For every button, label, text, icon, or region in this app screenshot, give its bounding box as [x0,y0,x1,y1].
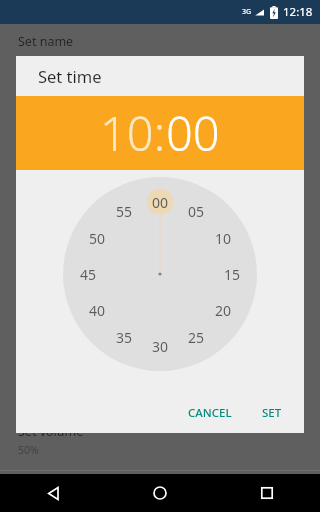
staticText: Alarm 1 [18,53,57,67]
staticText: 55 [116,202,133,221]
staticText: 20 [215,301,232,320]
staticText: 10 [215,229,232,248]
staticText: 15 [224,265,241,284]
staticText: 50% [18,443,39,457]
staticText: 40 [89,301,106,320]
staticText: 30 [152,337,169,356]
button[interactable]: Home [106,474,213,512]
staticText: Set volume [18,423,84,440]
staticText: CANCEL [188,405,232,421]
staticText: 00 [152,193,169,212]
button[interactable]: Back [0,474,106,512]
button[interactable]: 00 [166,101,220,165]
button[interactable]: 10: [100,101,166,165]
button[interactable]: CANCEL [180,399,240,427]
staticText: Set name [18,33,74,50]
staticText: 05 [188,202,205,221]
button[interactable]: SET [254,399,290,427]
staticText: 50 [89,229,106,248]
staticText: 25 [188,328,205,347]
staticText: SET [262,405,282,421]
staticText: 35 [116,328,133,347]
staticText: 12:18 [283,4,313,20]
staticText: Set time [38,65,102,87]
staticText: 45 [80,265,97,284]
button[interactable]: Select minutes [63,177,257,371]
button[interactable]: Recent apps [213,474,320,512]
staticText: 3G [242,7,252,17]
